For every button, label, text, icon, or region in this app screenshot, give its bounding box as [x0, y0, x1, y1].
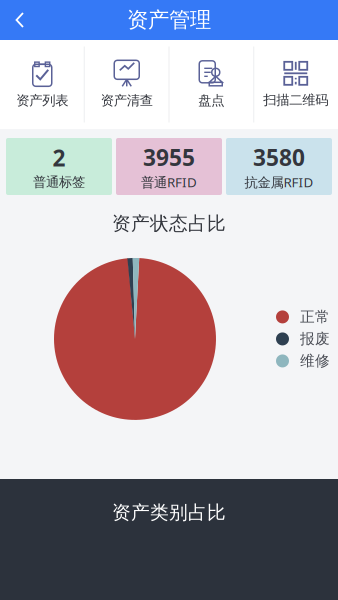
staticText: 3955: [143, 142, 195, 172]
staticText: 扫描二维码: [263, 92, 328, 108]
staticText: 资产状态占比: [112, 212, 226, 235]
staticText: 资产清查: [101, 92, 153, 109]
button[interactable]: Back: [0, 0, 40, 40]
staticText: 普通标签: [33, 174, 85, 190]
button[interactable]: 资产列表: [0, 45, 84, 123]
staticText: 资产类别占比: [112, 501, 226, 524]
button[interactable]: 3580: [226, 138, 332, 195]
staticText: 维修: [300, 352, 330, 370]
staticText: 资产管理: [127, 7, 211, 33]
staticText: 盘点: [198, 92, 224, 109]
staticText: 抗金属RFID: [244, 173, 313, 191]
staticText: 2: [52, 143, 65, 173]
staticText: 正常: [300, 308, 330, 326]
button[interactable]: 扫描二维码: [253, 45, 338, 123]
staticText: 报废: [300, 330, 330, 348]
button[interactable]: 3955: [116, 138, 222, 195]
button[interactable]: 2: [6, 138, 112, 195]
button[interactable]: 资产清查: [84, 45, 169, 123]
staticText: 3580: [253, 142, 305, 172]
staticText: 资产列表: [16, 92, 68, 109]
staticText: 普通RFID: [141, 173, 197, 191]
button[interactable]: 盘点: [169, 45, 253, 123]
